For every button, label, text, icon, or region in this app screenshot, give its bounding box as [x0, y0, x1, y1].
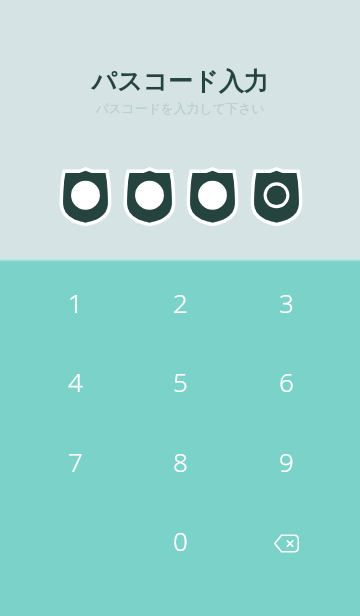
button[interactable]: 0	[135, 508, 225, 572]
button[interactable]: 2	[135, 270, 225, 334]
staticText: 0	[173, 523, 188, 558]
staticText: 9	[279, 444, 294, 479]
button[interactable]: 9	[241, 429, 331, 493]
button[interactable]: 6	[241, 349, 331, 413]
button[interactable]: 8	[135, 429, 225, 493]
button[interactable]: 5	[135, 349, 225, 413]
other: Delete	[274, 534, 299, 553]
staticText: 8	[173, 444, 188, 479]
button[interactable]: 1	[30, 270, 120, 334]
staticText: 2	[173, 285, 188, 320]
staticText: 6	[279, 364, 294, 399]
staticText: 3	[279, 285, 294, 320]
button[interactable]: 3	[241, 270, 331, 334]
button[interactable]: 7	[30, 429, 120, 493]
staticText: 1	[68, 285, 83, 320]
staticText: 5	[173, 364, 188, 399]
staticText: 7	[68, 444, 83, 479]
staticText: パスコードを入力して下さい	[95, 101, 265, 117]
staticText: 4	[68, 364, 83, 399]
button[interactable]: Delete	[241, 508, 331, 572]
staticText: パスコード入力	[91, 66, 269, 97]
button[interactable]: 4	[30, 349, 120, 413]
